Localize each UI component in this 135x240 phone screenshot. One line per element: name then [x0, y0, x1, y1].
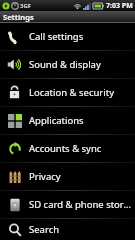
staticText: 7:03 PM: [106, 1, 133, 11]
other: Call settings: [7, 29, 22, 44]
other: Location and security: [7, 85, 22, 100]
staticText: Call settings: [29, 30, 84, 43]
button[interactable]: Call settings: [0, 23, 135, 50]
button[interactable]: Applications: [0, 107, 135, 134]
staticText: Applications: [29, 114, 84, 127]
staticText: Accounts & sync: [29, 142, 102, 155]
button[interactable]: Search: [0, 219, 135, 240]
other: Search: [8, 223, 22, 237]
button[interactable]: Location and security: [0, 79, 135, 106]
staticText: SD card & phone storage: [29, 198, 135, 211]
other: Applications: [8, 114, 22, 128]
staticText: Settings: [3, 12, 34, 22]
button[interactable]: Accounts and sync: [0, 135, 135, 162]
button[interactable]: SD card and phone storage: [0, 191, 135, 218]
other: Accounts and sync: [8, 142, 22, 156]
button[interactable]: Privacy: [0, 163, 135, 190]
staticText: Sound & display: [29, 58, 101, 71]
other: SD card and phone storage: [8, 198, 22, 212]
staticText: 3GF: [20, 2, 32, 10]
staticText: Location & security: [29, 86, 114, 99]
staticText: Privacy: [29, 170, 61, 183]
other: Sound and display: [7, 57, 22, 72]
button[interactable]: Sound and display: [0, 51, 135, 78]
staticText: Search: [29, 223, 60, 236]
other: Privacy: [8, 170, 22, 184]
